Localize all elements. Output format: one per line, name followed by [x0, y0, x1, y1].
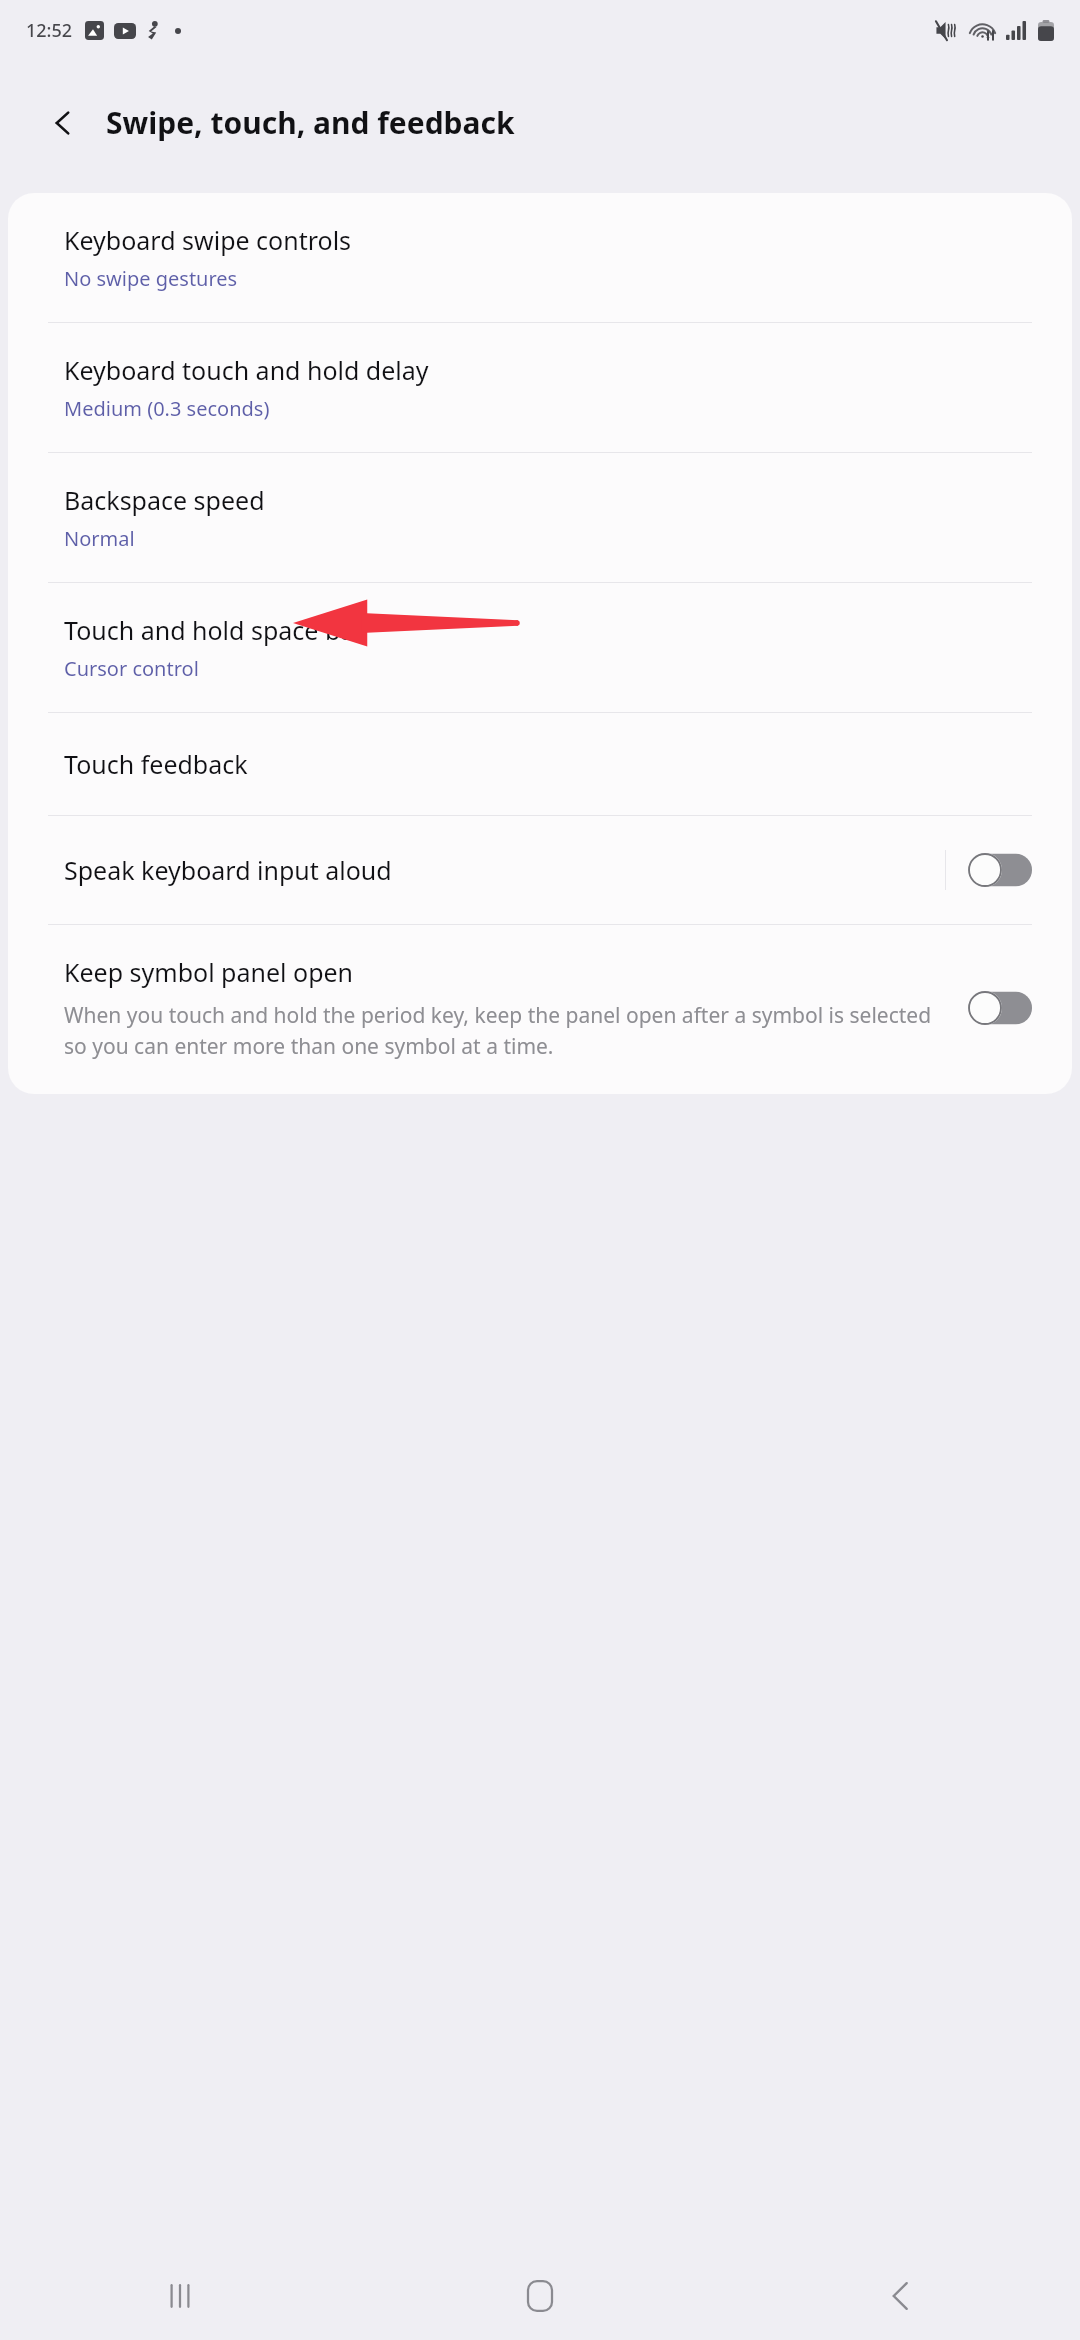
button[interactable]: Backspace speed	[8, 453, 1072, 582]
button[interactable]: Home	[360, 2252, 720, 2340]
button[interactable]: Back	[34, 94, 92, 152]
staticText: No swipe gestures	[64, 265, 238, 292]
staticText: Normal	[64, 525, 135, 552]
staticText: Touch feedback	[64, 747, 248, 781]
button[interactable]: Keyboard touch and hold delay	[8, 323, 1072, 452]
button[interactable]: Keyboard swipe controls	[8, 193, 1072, 322]
button[interactable]: Recents	[0, 2252, 360, 2340]
staticText: Keyboard touch and hold delay	[64, 353, 429, 387]
staticText: Speak keyboard input aloud	[64, 853, 945, 887]
button[interactable]: Toggle	[968, 853, 1032, 887]
staticText: Keep symbol panel open	[64, 955, 354, 989]
button[interactable]: Back	[720, 2252, 1080, 2340]
button[interactable]: Speak keyboard input aloud	[8, 816, 1072, 924]
staticText: Cursor control	[64, 655, 199, 682]
staticText: When you touch and hold the period key, …	[64, 1001, 948, 1060]
staticText: 12:52	[26, 18, 73, 43]
button[interactable]: Keep symbol panel open	[8, 925, 1072, 1094]
staticText: Backspace speed	[64, 483, 265, 517]
button[interactable]: Toggle	[968, 991, 1032, 1025]
button[interactable]: Touch feedback	[8, 713, 1072, 815]
staticText: Swipe, touch, and feedback	[106, 102, 515, 143]
button[interactable]: Touch and hold space bar	[8, 583, 1072, 712]
staticText: Touch and hold space bar	[64, 613, 365, 647]
staticText: Keyboard swipe controls	[64, 223, 352, 257]
staticText: Medium (0.3 seconds)	[64, 395, 270, 422]
